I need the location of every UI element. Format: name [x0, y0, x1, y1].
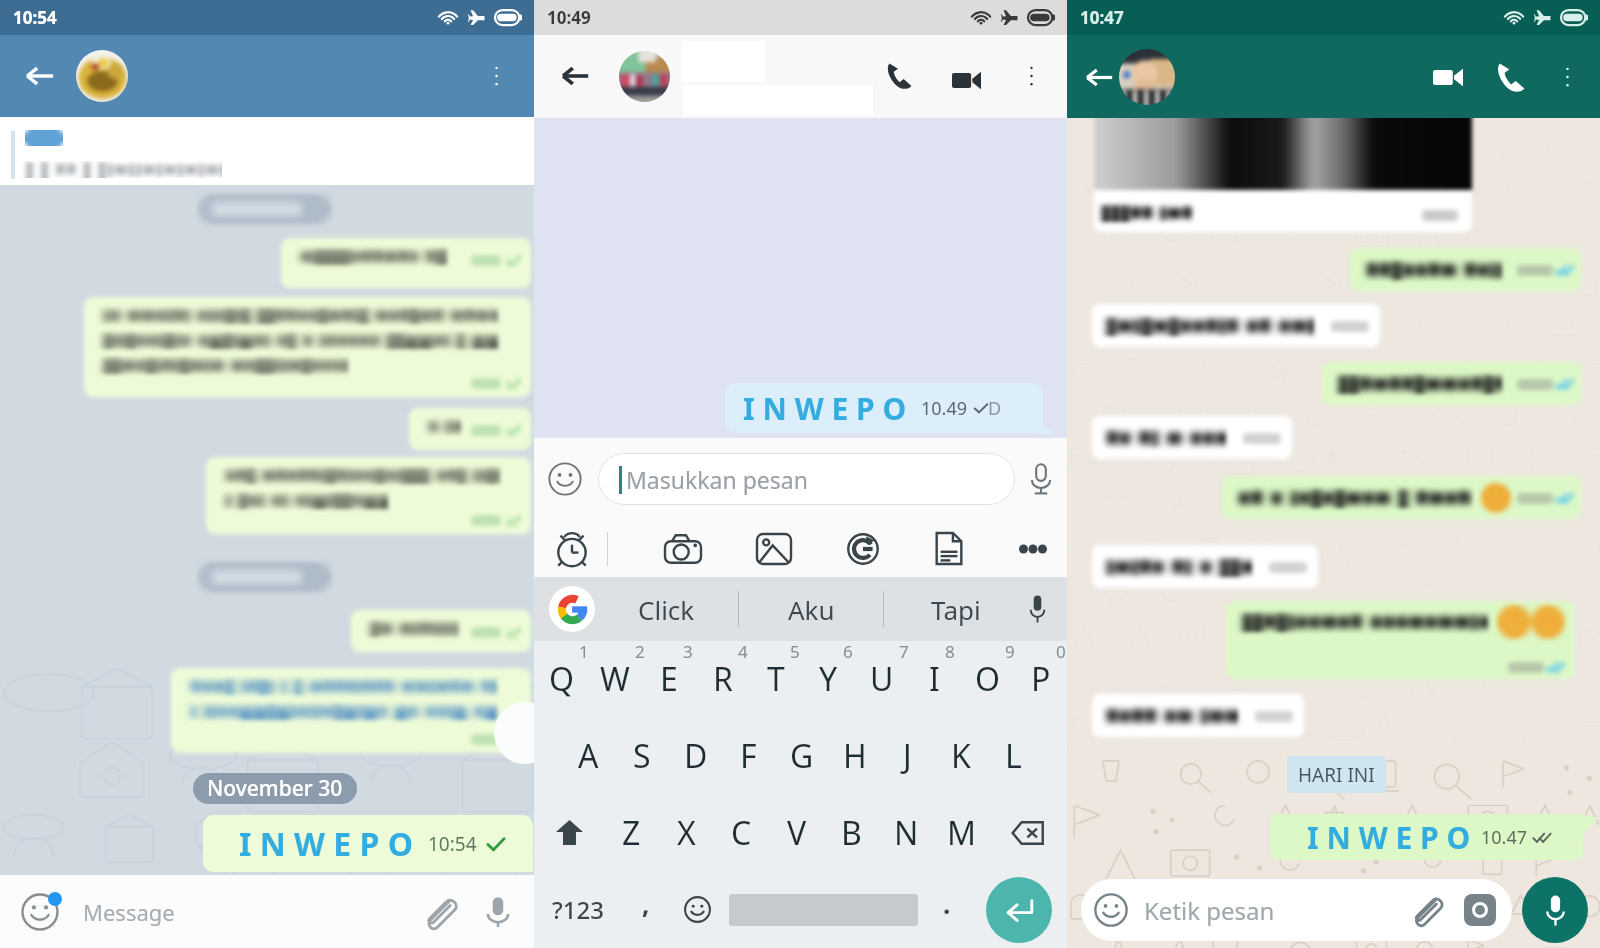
button[interactable]: More options [1016, 61, 1046, 91]
button[interactable]: Shift [534, 794, 604, 871]
button[interactable] [171, 668, 531, 753]
button[interactable]: Y [802, 641, 855, 717]
button[interactable]: Document [935, 532, 963, 565]
button[interactable]: A [561, 717, 615, 794]
button[interactable]: F [722, 717, 775, 794]
button[interactable]: Profile photo [1119, 49, 1175, 105]
button[interactable]: H [828, 717, 881, 794]
button[interactable] [409, 408, 531, 450]
button[interactable]: Space [724, 871, 923, 948]
button[interactable]: Masukkan pesan [619, 453, 1015, 505]
button[interactable]: W [588, 641, 642, 717]
button[interactable]: Click [595, 577, 738, 641]
button[interactable]: P [1014, 641, 1067, 717]
button[interactable]: X [659, 794, 714, 871]
button[interactable] [1094, 118, 1472, 232]
button[interactable]: O [961, 641, 1014, 717]
button[interactable]: G [775, 717, 828, 794]
button[interactable]: J [881, 717, 934, 794]
staticText: 10.49 [921, 396, 968, 421]
button[interactable]: , [622, 871, 670, 948]
button[interactable]: I [908, 641, 961, 717]
button[interactable]: B [824, 794, 879, 871]
button[interactable]: Search with Google [847, 533, 879, 565]
button[interactable]: Attach [1410, 895, 1440, 925]
button[interactable]: L [987, 717, 1040, 794]
button[interactable]: Profile photo [76, 50, 128, 102]
button[interactable]: R [696, 641, 749, 717]
button[interactable]: N [879, 794, 934, 871]
button[interactable]: Emoji [548, 462, 582, 496]
button[interactable]: E [642, 641, 696, 717]
button[interactable]: U [855, 641, 908, 717]
button[interactable]: Emoji [21, 893, 59, 931]
button[interactable] [84, 297, 531, 397]
button[interactable]: . [923, 871, 971, 948]
staticText: Message [83, 897, 175, 927]
button[interactable]: Video call [949, 63, 983, 97]
button[interactable]: C [714, 794, 769, 871]
button[interactable]: I N W E P O [1286, 814, 1572, 860]
button[interactable]: K [934, 717, 987, 794]
button[interactable] [1102, 694, 1295, 737]
button[interactable]: Video call [1430, 59, 1466, 95]
button[interactable]: Q [534, 641, 588, 717]
button[interactable]: I N W E P O [222, 815, 521, 872]
button[interactable] [1102, 304, 1371, 347]
button[interactable]: Attach [422, 896, 454, 928]
button[interactable]: Backspace [989, 794, 1067, 871]
staticText: 5 [790, 640, 800, 663]
staticText: 1 [579, 640, 589, 663]
button[interactable]: Timer [554, 531, 590, 567]
button[interactable]: M [934, 794, 989, 871]
button[interactable]: Scroll to bottom [494, 702, 556, 764]
button[interactable]: More options [1552, 62, 1582, 92]
button[interactable]: S [615, 717, 669, 794]
button[interactable]: Back [20, 56, 60, 96]
button[interactable]: Emoji [1094, 893, 1128, 927]
button[interactable]: Back [1081, 59, 1117, 95]
button[interactable]: HARI INI [1298, 756, 1375, 793]
button[interactable]: Back [557, 58, 593, 94]
button[interactable]: Aku [739, 577, 883, 641]
button[interactable]: More [1019, 544, 1047, 554]
button[interactable] [281, 238, 531, 288]
button[interactable]: Enter [986, 877, 1052, 943]
button[interactable]: Google [549, 586, 595, 632]
button[interactable]: D [669, 717, 722, 794]
button[interactable]: Camera [665, 534, 701, 564]
button[interactable]: Record voice message [1522, 877, 1588, 943]
button[interactable]: Voice message [486, 896, 510, 928]
button[interactable]: November 30 [207, 773, 343, 804]
button[interactable] [1334, 362, 1574, 405]
staticText: M [947, 811, 977, 855]
button[interactable]: T [749, 641, 802, 717]
button[interactable]: Profile photo [619, 51, 670, 102]
button[interactable]: Tapi [884, 577, 1028, 641]
staticText: Y [819, 657, 838, 701]
button[interactable] [1234, 476, 1574, 519]
button[interactable] [206, 457, 531, 534]
button[interactable]: Voice input [1029, 463, 1053, 495]
staticText: P [1031, 657, 1051, 701]
button[interactable] [1102, 416, 1283, 459]
button[interactable]: Voice typing [1028, 595, 1047, 623]
button[interactable]: More options [476, 56, 516, 96]
button[interactable]: Camera [1464, 894, 1496, 926]
button[interactable]: Call [1492, 59, 1528, 95]
button[interactable]: ?123 [534, 871, 622, 948]
button[interactable] [351, 610, 531, 652]
staticText: Aku [788, 592, 835, 627]
staticText: ?123 [552, 893, 604, 926]
button[interactable]: Gallery [757, 534, 791, 564]
button[interactable]: Emoji [670, 871, 724, 948]
staticText: E [660, 657, 678, 701]
button[interactable]: V [769, 794, 824, 871]
button[interactable] [1362, 248, 1574, 291]
button[interactable] [1102, 545, 1309, 588]
button[interactable]: I N W E P O [743, 383, 1031, 433]
button[interactable] [1238, 605, 1565, 675]
button[interactable]: Emoji [1094, 879, 1496, 941]
button[interactable]: Call [882, 59, 916, 93]
button[interactable]: Z [604, 794, 659, 871]
